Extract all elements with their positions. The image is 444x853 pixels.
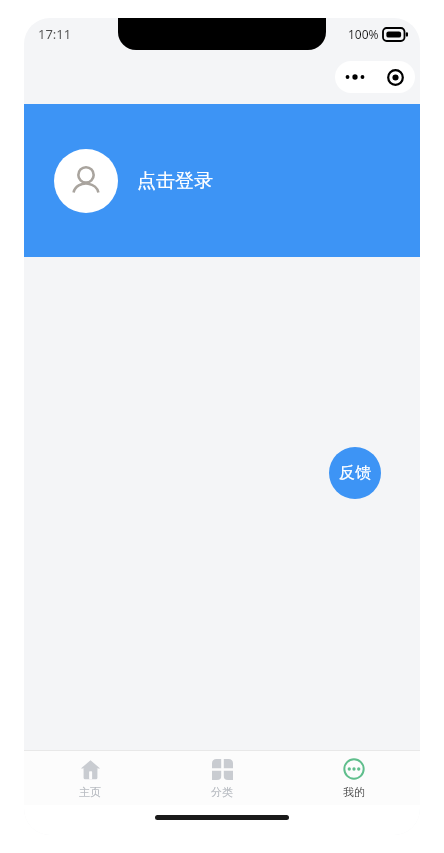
- button[interactable]: 点击登录: [24, 104, 420, 257]
- button[interactable]: More: [335, 61, 375, 93]
- staticText: 分类: [211, 785, 233, 799]
- button[interactable]: 反馈: [329, 447, 381, 499]
- staticText: 点击登录: [137, 169, 213, 193]
- staticText: 主页: [79, 785, 101, 799]
- staticText: 我的: [343, 785, 365, 799]
- staticText: 反馈: [339, 463, 371, 483]
- button[interactable]: 主页: [24, 751, 156, 805]
- button[interactable]: 分类: [156, 751, 288, 805]
- button[interactable]: 我的: [288, 751, 420, 805]
- button[interactable]: Close: [375, 61, 415, 93]
- staticText: 100%: [348, 26, 379, 42]
- staticText: 17:11: [38, 25, 72, 43]
